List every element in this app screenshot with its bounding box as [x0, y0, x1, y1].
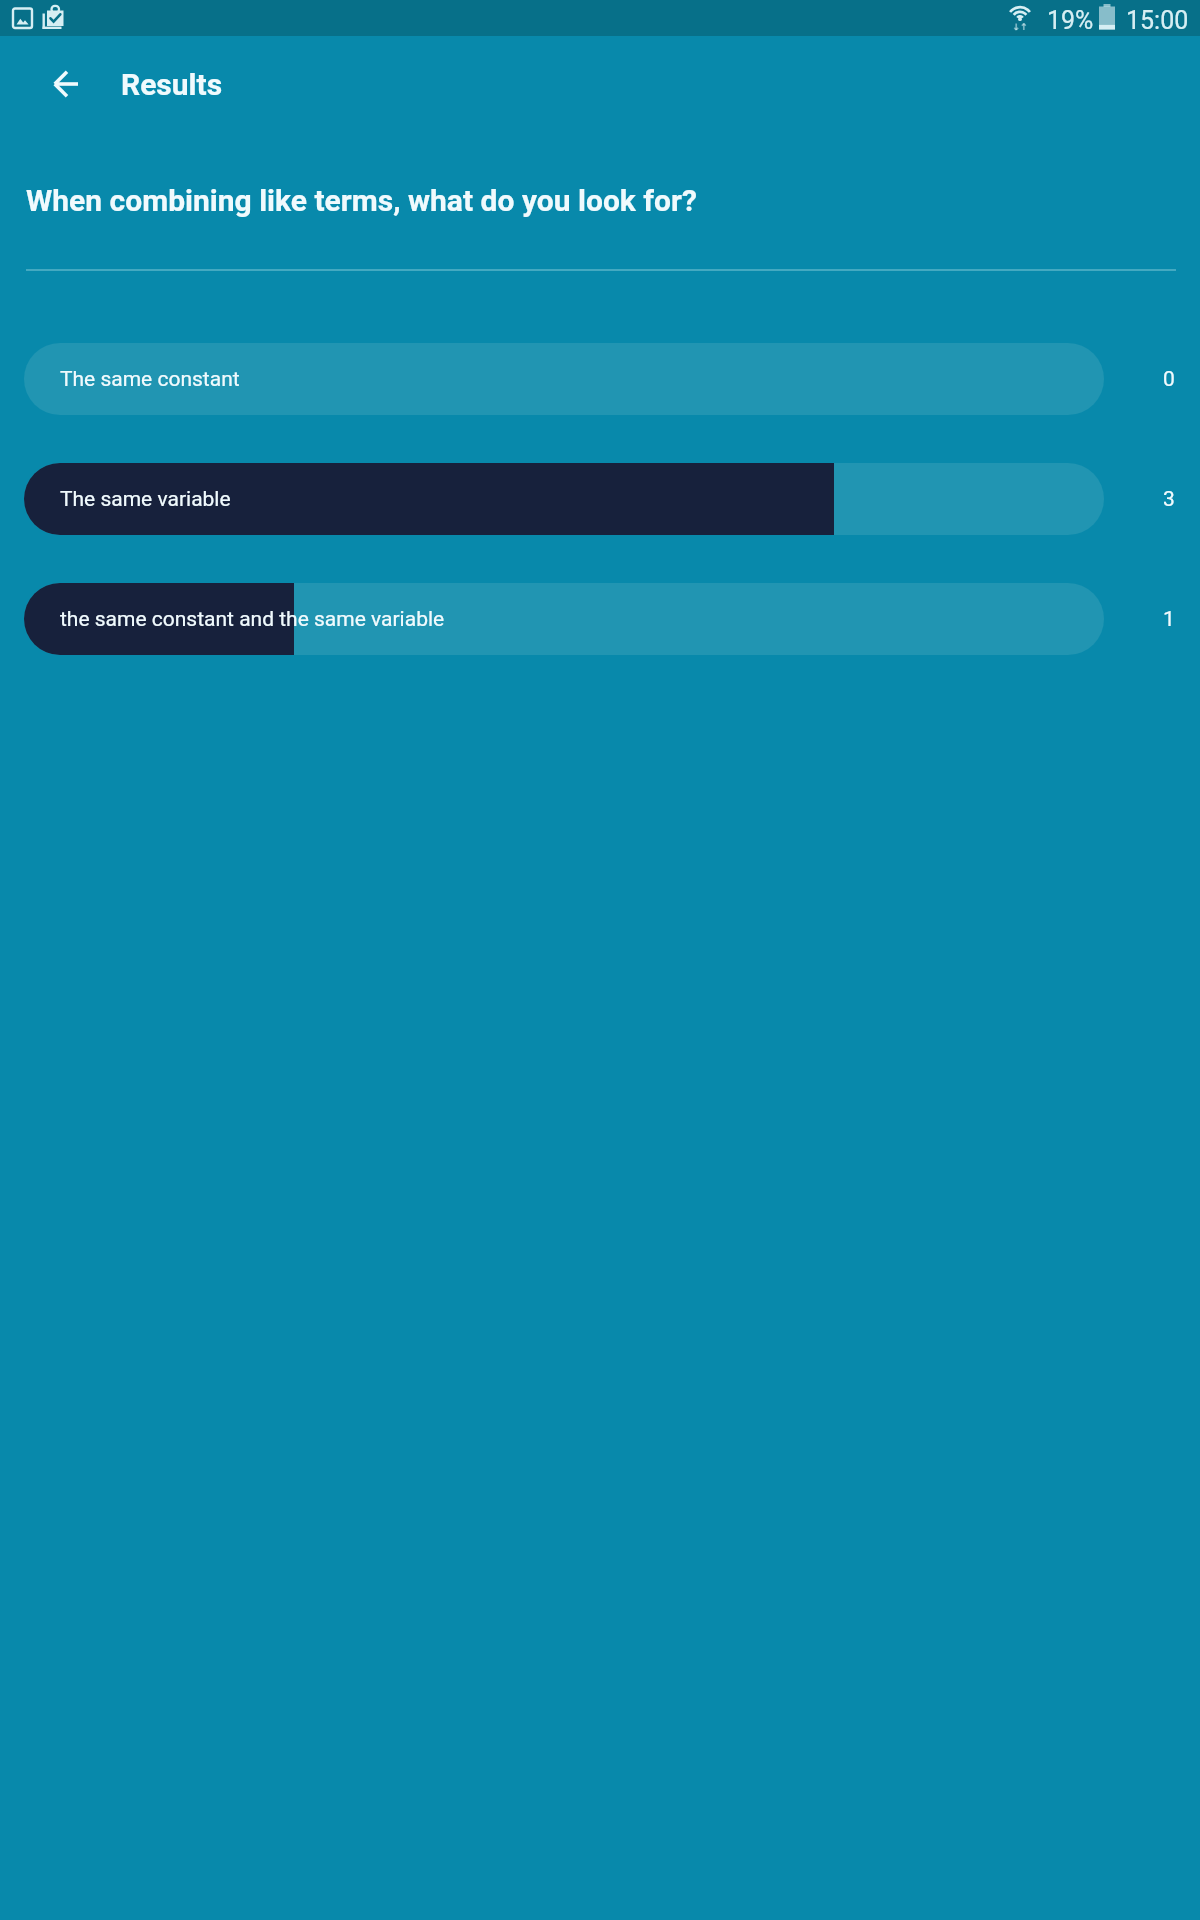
button[interactable]: the same constant and the same variable [0, 583, 1200, 655]
staticText: the same constant and the same variable [60, 607, 445, 632]
button[interactable]: Back [38, 56, 94, 112]
button[interactable]: The same constant [0, 343, 1200, 415]
staticText: 3 [1163, 487, 1175, 512]
staticText: Results [121, 67, 223, 102]
staticText: 0 [1163, 367, 1175, 392]
staticText: When combining like terms, what do you l… [26, 183, 697, 218]
staticText: 1 [1163, 607, 1175, 632]
staticText: 15:00 [1126, 6, 1189, 35]
staticText: The same variable [60, 487, 231, 512]
staticText: The same constant [60, 367, 240, 392]
button[interactable]: The same variable [0, 463, 1200, 535]
staticText: 19% [1047, 6, 1094, 35]
